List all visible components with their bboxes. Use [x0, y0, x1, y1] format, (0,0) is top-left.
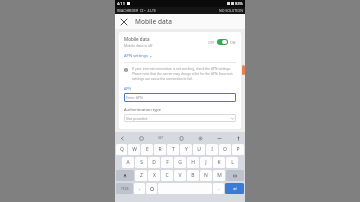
- staticText: ,: [139, 185, 141, 192]
- staticText: O: [223, 146, 227, 153]
- button[interactable]: U: [193, 144, 205, 155]
- staticText: ON: [230, 40, 236, 45]
- button[interactable]: Not provided: [124, 114, 236, 122]
- button[interactable]: Mobile data toggle: [217, 39, 228, 45]
- button[interactable]: G: [174, 157, 186, 168]
- button[interactable]: Back: [118, 134, 126, 142]
- staticText: Mobile data: [135, 17, 172, 26]
- staticText: M: [217, 172, 222, 179]
- staticText: GIF: [158, 136, 164, 140]
- button[interactable]: R: [154, 144, 166, 155]
- staticText: V: [178, 172, 182, 179]
- button[interactable]: M: [213, 170, 225, 181]
- staticText: Mobile data is off: [124, 43, 153, 48]
- staticText: C: [165, 172, 169, 179]
- staticText: W: [132, 146, 137, 153]
- staticText: X: [153, 172, 156, 179]
- staticText: A: [126, 159, 130, 166]
- staticText: Y: [185, 146, 188, 153]
- staticText: F: [166, 159, 169, 166]
- button[interactable]: L: [226, 157, 238, 168]
- button[interactable]: E: [141, 144, 153, 155]
- button[interactable]: C: [161, 170, 173, 181]
- staticText: REACHRIDER CI • 4 LTE: [117, 8, 156, 13]
- staticText: G: [178, 159, 182, 166]
- button[interactable]: O: [219, 144, 231, 155]
- button[interactable]: ,: [134, 183, 145, 194]
- staticText: L: [231, 159, 234, 166]
- button[interactable]: B: [187, 170, 199, 181]
- button[interactable]: H: [187, 157, 199, 168]
- staticText: I: [211, 146, 213, 153]
- button[interactable]: I: [206, 144, 218, 155]
- staticText: APN: [124, 86, 132, 91]
- button[interactable]: Q: [116, 144, 127, 155]
- button[interactable]: Emoji: [146, 183, 157, 194]
- button[interactable]: X: [148, 170, 160, 181]
- staticText: NO SOLUTION: [219, 8, 243, 13]
- button[interactable]: Close: [118, 16, 130, 28]
- staticText: K: [217, 159, 221, 166]
- staticText: U: [197, 146, 201, 153]
- button[interactable]: More: [215, 134, 223, 142]
- staticText: J: [205, 159, 207, 166]
- button[interactable]: P: [232, 144, 244, 155]
- button[interactable]: Z: [135, 170, 147, 181]
- button[interactable]: Clipboard: [177, 134, 185, 142]
- staticText: OFF: [208, 40, 215, 45]
- button[interactable]: J: [200, 157, 212, 168]
- button[interactable]: D: [148, 157, 160, 168]
- button[interactable]: APN settings ⌄: [124, 53, 153, 58]
- staticText: 83%: [235, 1, 243, 6]
- staticText: APN settings ⌄: [124, 53, 153, 58]
- staticText: 4:11: [117, 1, 125, 6]
- button[interactable]: W: [128, 144, 140, 155]
- button[interactable]: Enter APN: [124, 93, 236, 102]
- staticText: Enter APN: [126, 95, 143, 100]
- staticText: Mobile data: [124, 36, 150, 42]
- staticText: P: [236, 146, 240, 153]
- button[interactable]: .: [213, 183, 224, 194]
- button[interactable]: Enter: [225, 183, 244, 194]
- staticText: Z: [140, 172, 143, 179]
- button[interactable]: Y: [180, 144, 192, 155]
- staticText: Authentication type: [124, 107, 161, 112]
- staticText: H: [191, 159, 195, 166]
- button[interactable]: F: [161, 157, 173, 168]
- button[interactable]: GIF: [156, 134, 166, 142]
- staticText: Not provided: [126, 116, 231, 121]
- button[interactable]: V: [174, 170, 186, 181]
- button[interactable]: ?123: [116, 183, 133, 194]
- staticText: S: [140, 159, 143, 166]
- button[interactable]: Voice input: [234, 134, 242, 142]
- staticText: B: [191, 172, 195, 179]
- button[interactable]: Stickers: [137, 134, 145, 142]
- button[interactable]: N: [200, 170, 212, 181]
- staticText: Q: [120, 146, 124, 153]
- staticText: R: [158, 146, 162, 153]
- button[interactable]: Settings: [196, 134, 204, 142]
- button[interactable]: K: [213, 157, 225, 168]
- staticText: ?123: [121, 186, 129, 191]
- button[interactable]: T: [167, 144, 179, 155]
- button[interactable]: A: [122, 157, 134, 168]
- staticText: N: [204, 172, 208, 179]
- button[interactable]: Shift: [116, 170, 134, 181]
- staticText: T: [172, 146, 175, 153]
- button[interactable]: Mobile data: [124, 36, 236, 48]
- staticText: E: [146, 146, 149, 153]
- button[interactable]: Backspace: [226, 170, 244, 181]
- button[interactable]: S: [135, 157, 147, 168]
- staticText: If your internet connection is not worki…: [132, 67, 236, 81]
- staticText: D: [152, 159, 156, 166]
- staticText: .: [218, 185, 220, 192]
